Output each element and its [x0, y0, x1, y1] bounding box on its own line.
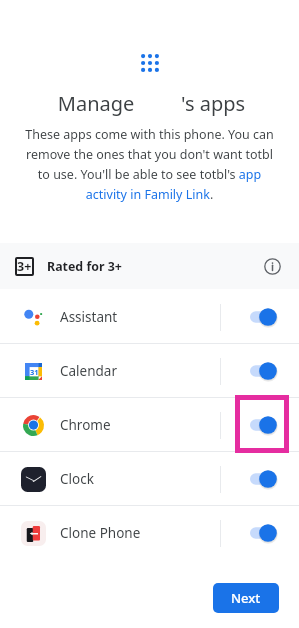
- staticText: 31: [30, 367, 39, 377]
- button[interactable]: [250, 524, 278, 542]
- button[interactable]: Next: [213, 583, 279, 613]
- staticText: Chrome: [60, 416, 111, 434]
- button[interactable]: [250, 308, 278, 326]
- button[interactable]: Clone Phone: [0, 506, 299, 560]
- staticText: Clone Phone: [60, 524, 141, 542]
- button[interactable]: [250, 416, 278, 434]
- staticText: Rated for 3+: [47, 258, 122, 275]
- button[interactable]: 3+: [0, 243, 299, 289]
- button[interactable]: Clock: [0, 452, 299, 506]
- staticText: Manage 's apps: [2, 90, 299, 117]
- button[interactable]: Chrome: [0, 398, 299, 452]
- staticText: 3+: [17, 258, 32, 275]
- staticText: Next: [231, 589, 261, 607]
- staticText: These apps come with this phone. You can…: [21, 126, 278, 203]
- button[interactable]: [250, 470, 278, 488]
- button[interactable]: Assistant: [0, 290, 299, 344]
- button[interactable]: More information: [260, 254, 284, 278]
- button[interactable]: 31: [0, 344, 299, 398]
- staticText: Assistant: [60, 308, 118, 326]
- button[interactable]: [250, 362, 278, 380]
- staticText: Calendar: [60, 362, 117, 380]
- staticText: Clock: [60, 470, 94, 488]
